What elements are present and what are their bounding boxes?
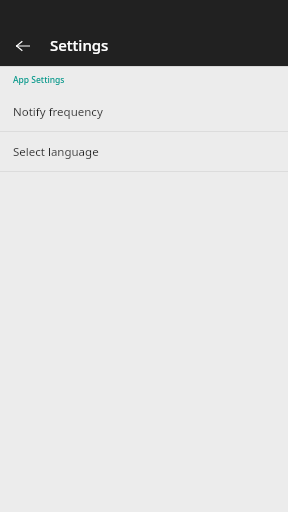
button[interactable]: Select language [0, 132, 288, 171]
staticText: Select language [13, 144, 99, 160]
staticText: Notify frequency [13, 104, 103, 120]
staticText: App Settings [13, 74, 65, 86]
button[interactable]: Back [9, 32, 36, 59]
button[interactable]: Notify frequency [0, 92, 288, 131]
staticText: Settings [50, 35, 109, 55]
